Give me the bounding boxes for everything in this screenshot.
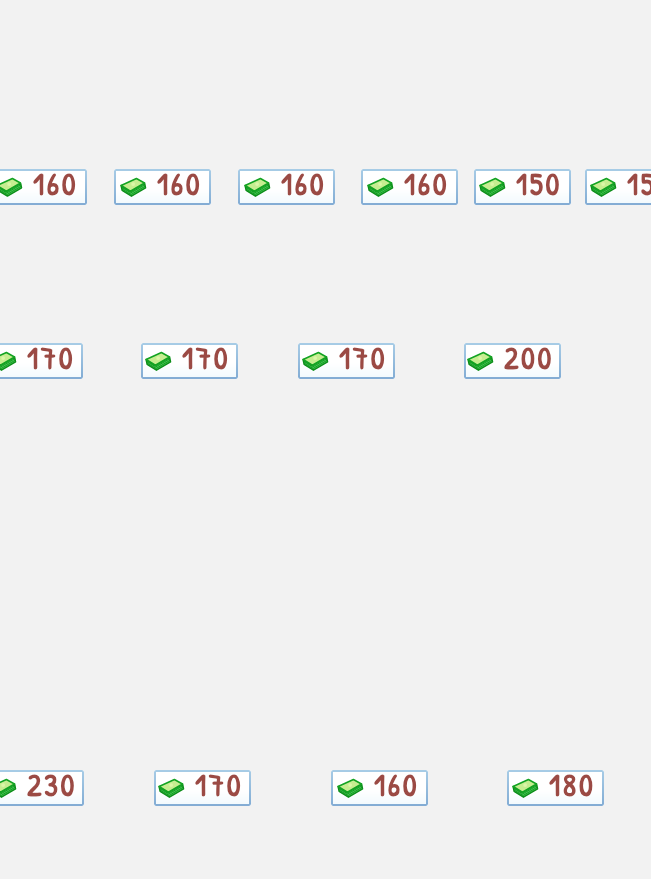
staticText: 160 <box>33 169 79 199</box>
staticText: 170 <box>182 343 231 373</box>
staticText: 160 <box>281 169 327 199</box>
staticText: 170 <box>27 343 76 373</box>
button[interactable]: 160 <box>114 169 211 205</box>
button[interactable]: 170 <box>154 770 251 806</box>
button[interactable]: 180 <box>507 770 604 806</box>
staticText: 150 <box>627 169 651 199</box>
button[interactable]: 230 <box>0 770 84 806</box>
staticText: 170 <box>339 343 388 373</box>
staticText: 160 <box>157 169 203 199</box>
button[interactable]: 160 <box>361 169 458 205</box>
button[interactable]: 170 <box>141 343 238 379</box>
staticText: 170 <box>195 770 244 800</box>
staticText: 180 <box>549 770 596 800</box>
button[interactable]: 160 <box>238 169 335 205</box>
button[interactable]: 160 <box>331 770 428 806</box>
button[interactable]: 200 <box>464 343 561 379</box>
staticText: 160 <box>404 169 450 199</box>
button[interactable]: 170 <box>0 343 83 379</box>
staticText: 150 <box>516 169 563 199</box>
staticText: 230 <box>27 770 78 800</box>
staticText: 200 <box>504 343 555 373</box>
button[interactable]: 170 <box>298 343 395 379</box>
button[interactable]: 160 <box>0 169 87 205</box>
button[interactable]: 150 <box>474 169 571 205</box>
button[interactable]: 150 <box>585 169 651 205</box>
staticText: 160 <box>374 770 420 800</box>
